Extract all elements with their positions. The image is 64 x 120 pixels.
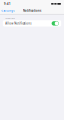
staticText: NOTIFICATIONS	[5, 17, 15, 19]
staticText: Notifications	[23, 9, 41, 13]
button[interactable]: Settings	[0, 8, 14, 14]
staticText: 9:41	[4, 2, 11, 6]
staticText: Allow Notifications	[5, 22, 31, 25]
staticText: Settings	[3, 9, 14, 13]
